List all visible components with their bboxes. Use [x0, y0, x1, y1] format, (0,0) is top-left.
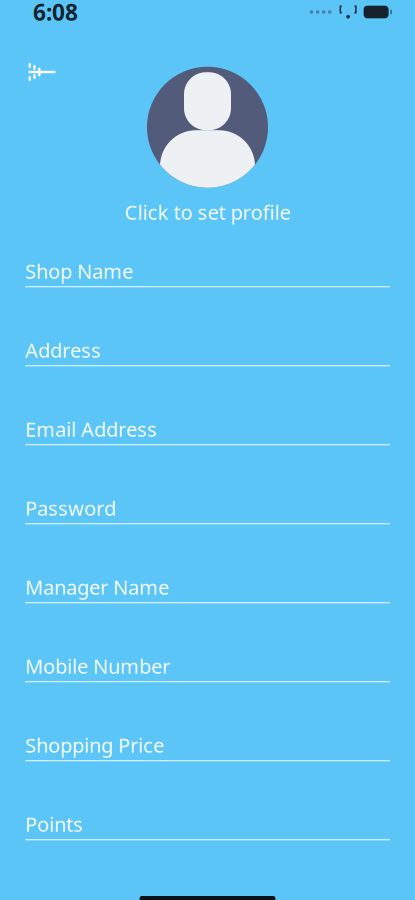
staticText: Address [25, 337, 101, 363]
button[interactable]: Points [25, 809, 390, 888]
staticText: Mobile Number [25, 653, 170, 679]
button[interactable]: Back [16, 48, 68, 96]
staticText: Shop Name [25, 258, 133, 284]
staticText: Password [25, 495, 116, 521]
staticText: 6:08 [33, 0, 78, 27]
button[interactable]: Manager Name [25, 572, 390, 651]
staticText: Email Address [25, 416, 157, 442]
staticText: Manager Name [25, 574, 169, 600]
button[interactable]: Shop Name [25, 256, 390, 335]
button[interactable]: Shopping Price [25, 730, 390, 809]
staticText: Shopping Price [25, 732, 164, 758]
button[interactable]: Mobile Number [25, 651, 390, 730]
button[interactable]: Click to set profile [124, 67, 290, 225]
button[interactable]: Address [25, 335, 390, 414]
button[interactable]: Email Address [25, 414, 390, 493]
button[interactable]: Password [25, 493, 390, 572]
staticText: Click to set profile [124, 199, 290, 225]
staticText: Points [25, 811, 83, 837]
